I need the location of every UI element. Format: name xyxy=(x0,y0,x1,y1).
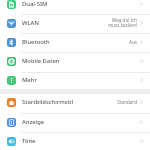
staticText: Mehr xyxy=(22,76,37,84)
button[interactable]: Töne xyxy=(0,133,150,149)
button[interactable]: Dual-SIM xyxy=(0,0,150,12)
staticText: Mobile Daten xyxy=(22,57,60,65)
staticText: Töne xyxy=(22,137,36,145)
button[interactable]: WLAN xyxy=(0,15,150,31)
staticText: WLAN xyxy=(22,19,39,27)
staticText: Dual-SIM xyxy=(22,0,48,8)
staticText: Weg da! Ich muss kacken! xyxy=(107,17,137,29)
button[interactable]: Mehr xyxy=(0,72,150,88)
staticText: Standard xyxy=(117,99,137,105)
staticText: Bluetooth xyxy=(22,38,50,46)
button[interactable]: Mobile Daten xyxy=(0,53,150,69)
staticText: Anzeige xyxy=(22,118,45,126)
staticText: Startbildschirmstil xyxy=(22,98,74,106)
button[interactable]: Bluetooth xyxy=(0,34,150,50)
staticText: Aus xyxy=(129,39,137,45)
button[interactable]: Startbildschirmstil xyxy=(0,94,150,110)
button[interactable]: Anzeige xyxy=(0,114,150,130)
